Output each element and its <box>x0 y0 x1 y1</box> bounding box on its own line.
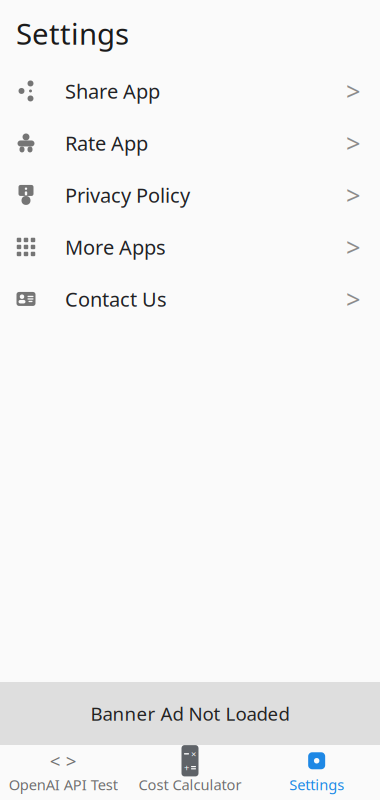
staticText: > <box>346 230 360 264</box>
staticText: + <box>184 761 189 774</box>
button[interactable]: Contact Us <box>0 273 380 325</box>
staticText: Rate App <box>65 130 148 156</box>
staticText: > <box>346 74 360 108</box>
button[interactable]: Settings <box>253 745 380 800</box>
staticText: > <box>346 282 360 316</box>
button[interactable]: × <box>127 745 253 800</box>
staticText: More Apps <box>65 234 166 260</box>
staticText: > <box>346 178 360 212</box>
button[interactable]: Privacy Policy <box>0 169 380 221</box>
staticText: < > <box>50 748 77 773</box>
staticText: Settings <box>16 14 129 53</box>
button[interactable]: Share App <box>0 65 380 117</box>
staticText: OpenAI API Test <box>9 775 118 794</box>
staticText: Settings <box>289 775 344 794</box>
staticText: > <box>346 126 360 160</box>
staticText: Privacy Policy <box>65 182 190 208</box>
staticText: Contact Us <box>65 286 167 312</box>
button[interactable]: More Apps <box>0 221 380 273</box>
button[interactable]: < > <box>0 745 127 800</box>
staticText: Banner Ad Not Loaded <box>90 701 289 726</box>
staticText: × <box>191 748 196 760</box>
staticText: Share App <box>65 78 160 104</box>
button[interactable]: Rate App <box>0 117 380 169</box>
staticText: Cost Calculator <box>138 775 241 794</box>
